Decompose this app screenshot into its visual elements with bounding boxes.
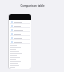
staticText: Comparison table bbox=[20, 4, 45, 8]
